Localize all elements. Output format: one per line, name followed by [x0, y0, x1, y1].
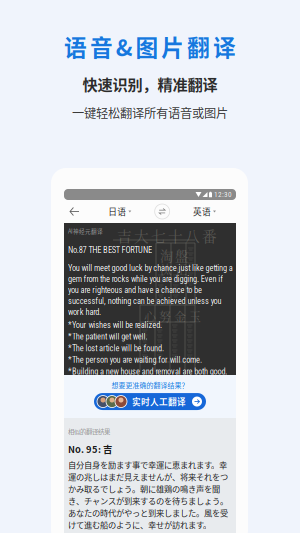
- button[interactable]: Back: [64, 200, 85, 223]
- staticText: No. 95: 吉: [68, 442, 112, 456]
- staticText: *The person you are waiting for will com…: [68, 355, 202, 365]
- staticText: 大: [134, 225, 149, 246]
- staticText: 12:30: [214, 190, 232, 199]
- staticText: 盤: [175, 246, 188, 265]
- staticText: 实时人工翻译: [132, 395, 186, 408]
- staticText: 一键轻松翻译所有语音或图片: [72, 104, 228, 122]
- staticText: 语音&图片翻译: [64, 30, 236, 63]
- staticText: 金: [174, 308, 186, 325]
- staticText: *Your wishes will be realized.: [68, 320, 162, 330]
- staticText: 番: [202, 225, 217, 246]
- button[interactable]: 日语: [102, 200, 137, 223]
- staticText: 日语: [108, 205, 126, 218]
- staticText: 正: [175, 261, 187, 278]
- staticText: 汰: [160, 261, 172, 278]
- staticText: No.87 THE BEST FORTUNE: [68, 245, 152, 255]
- staticText: *Building a new house and removal are bo…: [68, 367, 227, 376]
- staticText: You will meet good luck by chance just l…: [68, 263, 233, 317]
- button[interactable]: 实时人工翻译: [94, 393, 206, 410]
- staticText: *The lost article will be found.: [68, 343, 164, 353]
- staticText: 想要更准确的翻译结果？: [111, 380, 188, 390]
- button[interactable]: Swap languages: [155, 204, 170, 219]
- staticText: 吉: [117, 225, 132, 246]
- staticText: 相似的翻译结果: [68, 427, 110, 436]
- staticText: 淘: [160, 246, 173, 265]
- staticText: 英语: [193, 205, 211, 218]
- staticText: 十: [168, 225, 183, 246]
- staticText: 快速识别，精准翻译: [82, 73, 217, 95]
- staticText: 七: [151, 225, 166, 246]
- staticText: 自分自身を励ます事で幸運に恵まれます。幸運の兆しはまだ見えませんが、将来それをつ…: [68, 459, 228, 531]
- staticText: 八: [185, 225, 200, 246]
- staticText: *The patient will get well.: [68, 332, 147, 342]
- button[interactable]: 英语: [187, 200, 222, 223]
- staticText: 心: [144, 308, 156, 325]
- staticText: 努: [159, 308, 171, 325]
- staticText: 玉: [189, 308, 201, 325]
- staticText: AI神经元翻译: [68, 227, 103, 235]
